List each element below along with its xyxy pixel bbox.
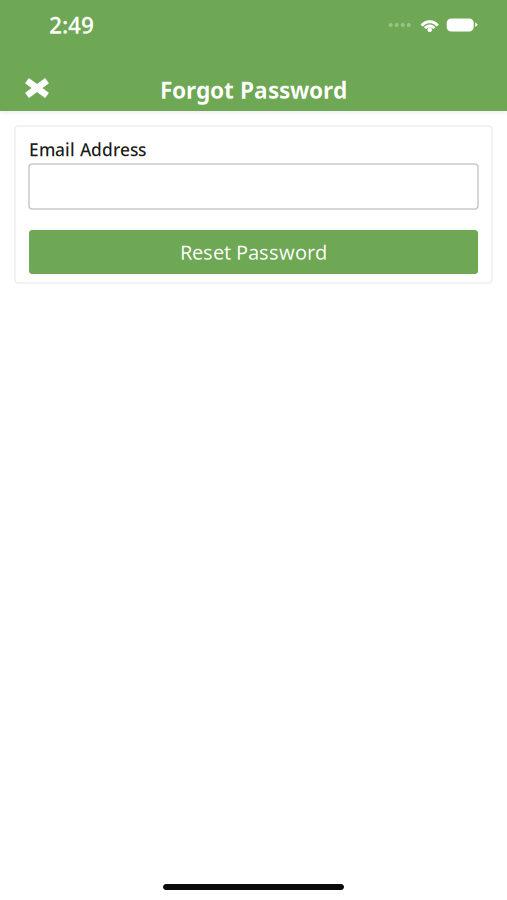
button[interactable]: Reset Password <box>29 230 478 274</box>
staticText: Forgot Password <box>160 75 347 105</box>
button[interactable]: Close <box>13 76 61 100</box>
staticText: Email Address <box>29 138 146 161</box>
staticText: 2:49 <box>49 10 94 40</box>
staticText: Reset Password <box>180 239 327 265</box>
